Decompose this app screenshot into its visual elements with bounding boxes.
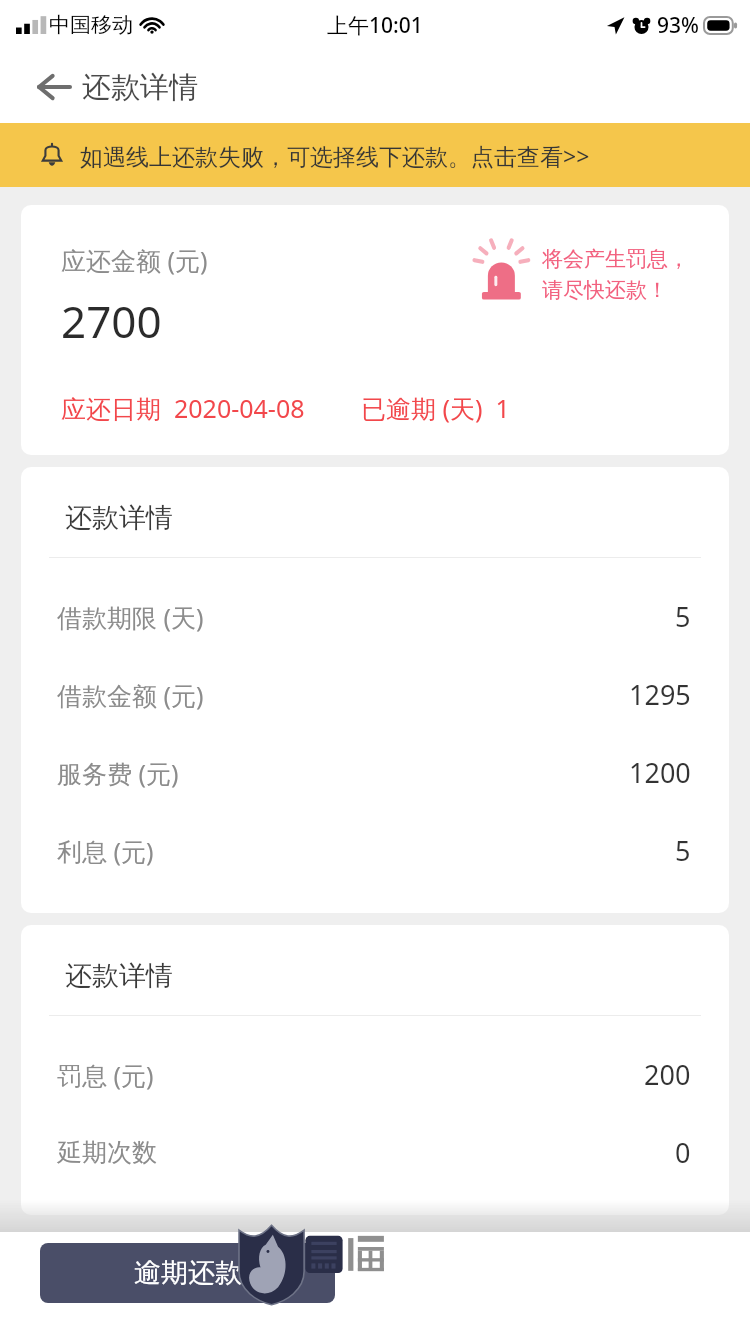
- staticText: 5: [675, 598, 691, 635]
- staticText: 已逾期 (天) 1: [361, 391, 510, 425]
- button[interactable]: 逾期还款: [40, 1243, 335, 1303]
- button[interactable]: 借款期限 (天): [21, 584, 729, 649]
- staticText: 1200: [629, 754, 691, 791]
- staticText: 5: [675, 832, 691, 869]
- staticText: 93%: [657, 11, 699, 40]
- staticText: 上午10:01: [327, 11, 423, 40]
- staticText: 请尽快还款！: [542, 277, 668, 303]
- staticText: 还款详情: [82, 69, 198, 106]
- staticText: 逾期还款: [134, 1256, 242, 1290]
- staticText: 还款详情: [65, 959, 173, 993]
- staticText: 借款期限 (天): [57, 600, 675, 634]
- button[interactable]: 如遇线上还款失败，可选择线下还款。点击查看>>: [0, 123, 750, 187]
- button[interactable]: 借款金额 (元): [21, 662, 729, 727]
- staticText: 2700: [61, 291, 162, 351]
- staticText: 中国移动: [49, 12, 133, 38]
- staticText: 应还日期 2020-04-08: [61, 391, 305, 425]
- staticText: 0: [675, 1134, 691, 1171]
- button[interactable]: 服务费 (元): [21, 740, 729, 805]
- button[interactable]: 罚息 (元): [21, 1042, 729, 1107]
- staticText: 罚息 (元): [57, 1058, 644, 1092]
- staticText: 将会产生罚息，: [542, 246, 689, 272]
- button[interactable]: 利息 (元): [21, 818, 729, 883]
- button[interactable]: 延期次数: [21, 1120, 729, 1185]
- button[interactable]: 应还金额 (元): [21, 205, 729, 455]
- staticText: 借款金额 (元): [57, 678, 629, 712]
- staticText: 服务费 (元): [57, 756, 629, 790]
- staticText: 还款详情: [65, 501, 173, 535]
- staticText: 200: [644, 1056, 691, 1093]
- button[interactable]: 返回: [30, 63, 78, 111]
- staticText: 利息 (元): [57, 834, 675, 868]
- staticText: 如遇线上还款失败，可选择线下还款。点击查看>>: [80, 140, 590, 171]
- staticText: 应还金额 (元): [61, 243, 208, 277]
- staticText: 1295: [629, 676, 691, 713]
- staticText: 延期次数: [57, 1137, 675, 1168]
